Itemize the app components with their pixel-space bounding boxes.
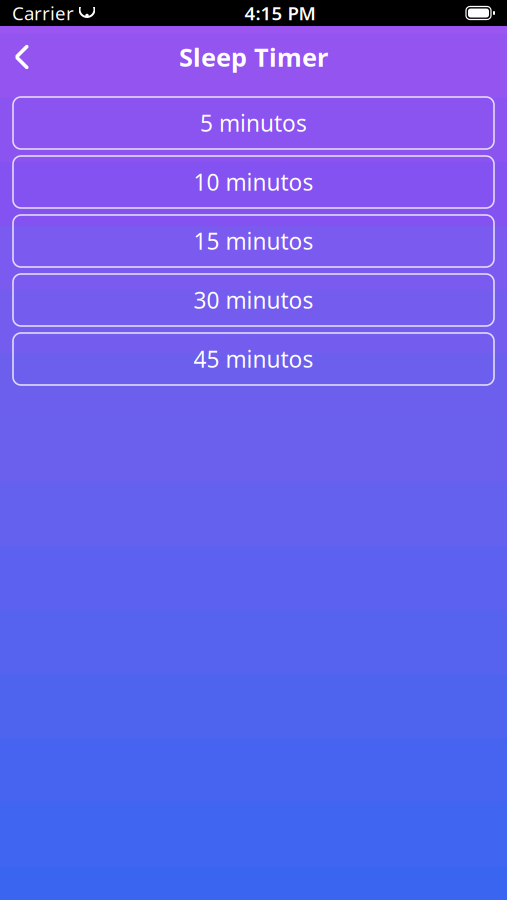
staticText: 4:15 PM [244,1,315,25]
staticText: Sleep Timer [179,40,328,74]
button[interactable]: 5 minutos [13,97,494,149]
staticText: 15 minutos [193,226,313,256]
staticText: 30 minutos [193,285,313,315]
staticText: 10 minutos [193,167,313,197]
staticText: Carrier [12,1,74,25]
staticText: 5 minutos [200,108,307,138]
button[interactable]: 15 minutos [13,215,494,267]
button[interactable]: 45 minutos [13,333,494,385]
button[interactable]: Back [0,33,44,81]
button[interactable]: 10 minutos [13,156,494,208]
button[interactable]: 30 minutos [13,274,494,326]
staticText: 45 minutos [193,344,313,374]
